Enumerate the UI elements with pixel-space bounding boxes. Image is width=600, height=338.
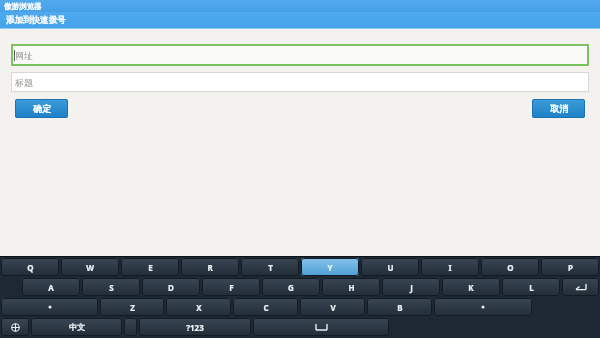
button[interactable]: Z [100, 298, 164, 316]
button[interactable]: F [202, 278, 260, 296]
button[interactable]: E [121, 258, 179, 276]
button[interactable]: 取消 [532, 99, 585, 118]
button[interactable]: V [300, 298, 365, 316]
button[interactable]: 确定 [15, 99, 68, 118]
button[interactable]: 网址 [11, 44, 589, 66]
button[interactable] [124, 318, 137, 336]
button[interactable]: H [322, 278, 380, 296]
staticText: Z [130, 302, 135, 313]
staticText: R [207, 262, 213, 273]
staticText: ?123 [186, 322, 204, 333]
staticText: K [468, 282, 474, 293]
staticText: H [348, 282, 355, 293]
button[interactable]: R [181, 258, 239, 276]
button[interactable]: Period [1, 298, 98, 316]
staticText: A [48, 282, 54, 293]
button[interactable]: W [61, 258, 119, 276]
button[interactable]: T [241, 258, 299, 276]
staticText: 确定 [33, 103, 51, 114]
button[interactable]: P [541, 258, 599, 276]
staticText: C [263, 302, 269, 313]
staticText: G [288, 282, 294, 293]
button[interactable]: B [367, 298, 432, 316]
button[interactable]: Comma [434, 298, 532, 316]
staticText: U [387, 262, 394, 273]
button[interactable]: I [421, 258, 479, 276]
staticText: 添加到快速拨号 [6, 15, 66, 26]
staticText: D [168, 282, 174, 293]
button[interactable]: Q [1, 258, 59, 276]
button[interactable]: O [481, 258, 539, 276]
staticText: I [448, 262, 452, 273]
staticText: L [529, 282, 534, 293]
staticText: Y [327, 262, 333, 273]
staticText: W [86, 262, 94, 273]
button[interactable]: U [361, 258, 419, 276]
staticText: B [397, 302, 403, 313]
button[interactable]: L [502, 278, 560, 296]
button[interactable]: Change language [1, 318, 29, 336]
staticText: Q [27, 262, 34, 273]
button[interactable]: ?123 [139, 318, 251, 336]
button[interactable]: G [262, 278, 320, 296]
button[interactable]: C [233, 298, 298, 316]
button[interactable]: S [82, 278, 140, 296]
staticText: T [268, 262, 273, 273]
staticText: S [109, 282, 114, 293]
button[interactable]: J [382, 278, 440, 296]
button[interactable]: X [166, 298, 231, 316]
staticText: 网址 [15, 50, 33, 61]
button[interactable]: K [442, 278, 500, 296]
staticText: V [330, 302, 336, 313]
button[interactable]: 标题 [11, 72, 589, 92]
staticText: 标题 [15, 77, 33, 88]
button[interactable]: Enter [562, 278, 599, 296]
staticText: X [196, 302, 202, 313]
staticText: J [410, 282, 413, 293]
staticText: F [229, 282, 234, 293]
staticText: 取消 [550, 103, 568, 114]
button[interactable]: Space [253, 318, 389, 336]
staticText: O [507, 262, 514, 273]
button[interactable]: 中文 [31, 318, 122, 336]
button[interactable]: A [22, 278, 80, 296]
button[interactable]: Y [301, 258, 359, 276]
staticText: 中文 [69, 322, 85, 332]
staticText: P [568, 262, 573, 273]
staticText: 傲游浏览器 [4, 2, 42, 11]
staticText: E [148, 262, 153, 273]
button[interactable]: D [142, 278, 200, 296]
